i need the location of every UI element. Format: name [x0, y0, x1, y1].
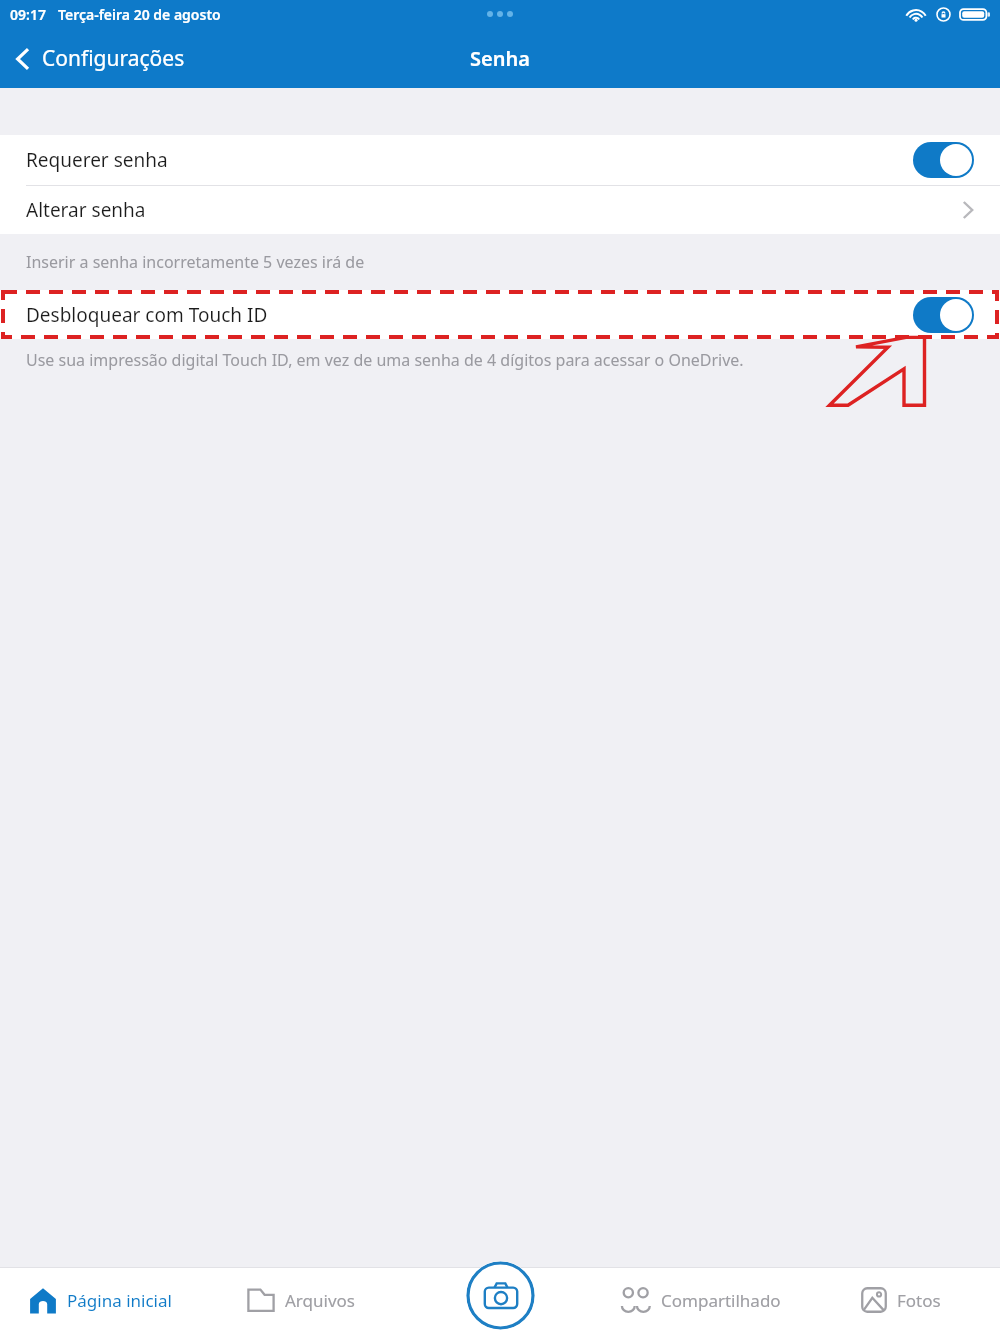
- button[interactable]: Compartilhado: [600, 1267, 800, 1333]
- button[interactable]: Desbloquear com Touch ID: [0, 290, 1000, 339]
- staticText: Terça-feira 20 de agosto: [58, 5, 221, 24]
- staticText: Configurações: [42, 44, 185, 73]
- button[interactable]: Câmera: [466, 1261, 535, 1330]
- staticText: Requerer senha: [26, 147, 168, 173]
- staticText: Inserir a senha incorretamente 5 vezes i…: [26, 251, 365, 273]
- staticText: Alterar senha: [26, 197, 146, 223]
- button[interactable]: Configurações: [0, 38, 195, 79]
- staticText: Desbloquear com Touch ID: [26, 302, 268, 328]
- staticText: Página inicial: [67, 1289, 172, 1312]
- staticText: Compartilhado: [661, 1289, 781, 1312]
- button[interactable]: Página inicial: [0, 1267, 200, 1333]
- staticText: Fotos: [897, 1289, 941, 1312]
- button[interactable]: Ativado: [913, 297, 974, 333]
- other: Abrir: [962, 200, 974, 220]
- staticText: Senha: [470, 45, 530, 72]
- button[interactable]: Ativado: [913, 142, 974, 178]
- button[interactable]: Alterar senha: [0, 186, 1000, 234]
- staticText: Use sua impressão digital Touch ID, em v…: [26, 349, 744, 371]
- button[interactable]: Requerer senha: [0, 135, 1000, 185]
- button[interactable]: Arquivos: [200, 1267, 400, 1333]
- staticText: 09:17: [10, 5, 46, 24]
- staticText: Arquivos: [285, 1289, 355, 1312]
- button[interactable]: Fotos: [800, 1267, 1000, 1333]
